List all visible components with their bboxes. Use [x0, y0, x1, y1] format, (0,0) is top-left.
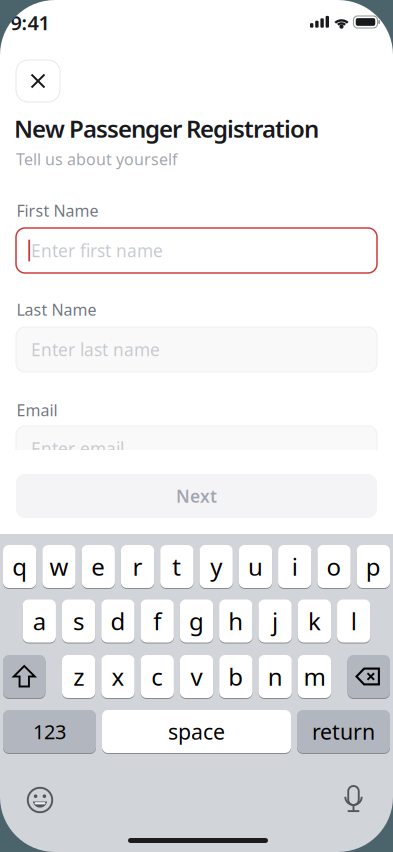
button[interactable]: n [258, 655, 292, 698]
staticText: d [110, 605, 125, 637]
button[interactable]: Shift [3, 655, 45, 698]
button[interactable]: w [42, 545, 76, 588]
button[interactable]: space [102, 710, 291, 753]
button[interactable]: m [298, 655, 331, 698]
button[interactable]: Close [16, 60, 60, 102]
button[interactable]: l [337, 599, 370, 642]
staticText: space [168, 717, 225, 746]
button[interactable]: q [3, 545, 36, 588]
staticText: n [268, 661, 283, 692]
button[interactable]: z [62, 655, 95, 698]
button[interactable]: g [180, 599, 213, 642]
button[interactable]: Emoji [27, 787, 53, 813]
button[interactable]: d [101, 599, 134, 642]
button[interactable]: r [121, 545, 154, 588]
staticText: y [210, 551, 222, 582]
button[interactable]: First name text field [16, 228, 377, 273]
button[interactable]: k [298, 599, 331, 642]
staticText: w [49, 551, 68, 582]
staticText: q [12, 551, 27, 582]
staticText: r [132, 551, 142, 582]
button[interactable]: Email text field [16, 426, 377, 471]
staticText: v [191, 661, 203, 692]
staticText: z [73, 661, 84, 692]
button[interactable]: f [140, 599, 174, 642]
staticText: Email [16, 399, 57, 421]
button[interactable]: v [180, 655, 213, 698]
staticText: Enter first name [31, 239, 163, 262]
button[interactable]: b [219, 655, 252, 698]
staticText: return [312, 717, 375, 746]
button[interactable]: o [317, 545, 351, 588]
staticText: 123 [33, 718, 66, 745]
staticText: First Name [16, 200, 98, 221]
staticText: u [248, 551, 263, 582]
staticText: a [33, 605, 46, 637]
button[interactable]: j [258, 599, 292, 642]
button[interactable]: Numbers [3, 710, 96, 753]
staticText: i [292, 551, 298, 582]
button[interactable]: Last name text field [16, 327, 377, 372]
button[interactable]: h [219, 599, 252, 642]
staticText: k [308, 605, 321, 637]
staticText: Last Name [16, 299, 96, 320]
staticText: c [151, 661, 163, 692]
staticText: o [326, 551, 341, 582]
staticText: m [303, 661, 325, 692]
button[interactable]: Dictation [343, 786, 364, 814]
staticText: Enter last name [31, 338, 160, 361]
staticText: h [228, 605, 243, 637]
staticText: Next [176, 484, 217, 507]
staticText: p [366, 551, 381, 582]
button[interactable]: c [141, 655, 174, 698]
button[interactable]: e [82, 545, 115, 588]
staticText: Tell us about yourself [16, 148, 178, 170]
button[interactable]: a [23, 599, 56, 642]
button[interactable]: i [278, 545, 311, 588]
staticText: b [228, 661, 243, 692]
button[interactable]: Next [16, 474, 377, 518]
staticText: x [111, 661, 124, 692]
button[interactable]: p [357, 545, 390, 588]
staticText: New Passenger Registration [14, 113, 319, 144]
staticText: e [91, 551, 105, 582]
button[interactable]: s [62, 599, 95, 642]
staticText: 9:41 [10, 9, 49, 36]
staticText: g [189, 605, 204, 637]
button[interactable]: Delete [347, 655, 390, 698]
staticText: j [272, 605, 278, 637]
button[interactable]: u [239, 545, 272, 588]
button[interactable]: x [101, 655, 135, 698]
staticText: t [172, 551, 181, 582]
staticText: Enter email [31, 437, 124, 460]
button[interactable]: y [199, 545, 233, 588]
button[interactable]: t [160, 545, 193, 588]
staticText: l [351, 605, 357, 637]
staticText: s [73, 605, 84, 637]
button[interactable]: Return [297, 710, 390, 753]
staticText: f [153, 605, 161, 637]
